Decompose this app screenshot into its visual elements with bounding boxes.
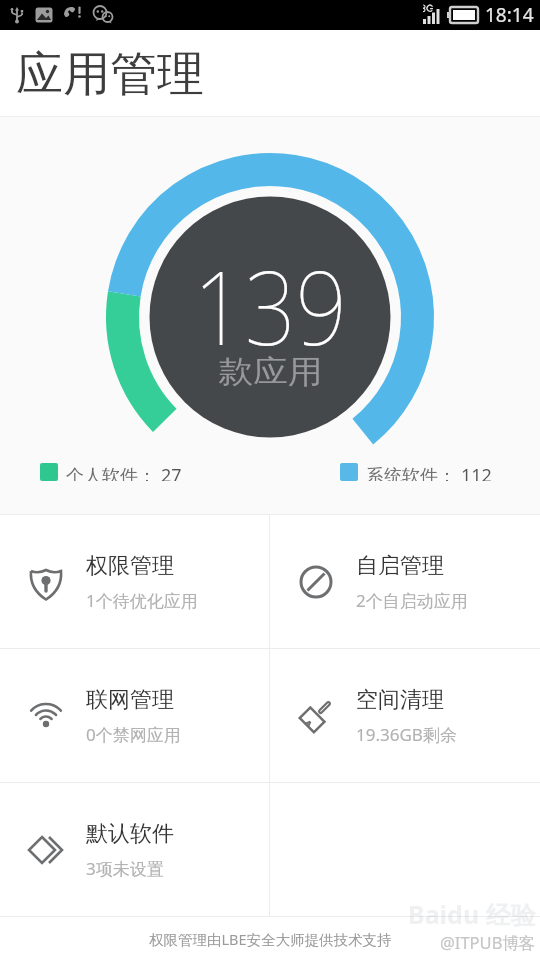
button[interactable]: 默认软件 [0,783,269,916]
staticText: 27 [161,463,182,481]
staticText: 自启管理 [356,552,444,580]
staticText: 空间清理 [356,686,444,714]
staticText: 3项未设置 [86,857,164,880]
staticText: 0个禁网应用 [86,723,181,746]
staticText: 个人软件： [66,463,161,481]
staticText: Baidu 经验 [408,897,536,931]
staticText: 权限管理 [86,552,174,580]
button[interactable]: 权限管理 [0,515,269,648]
staticText: 款应用 [218,352,323,391]
button[interactable]: 自启管理 [270,515,540,648]
staticText: 1个待优化应用 [86,589,198,612]
staticText: 139 [193,236,347,356]
staticText: 18:14 [485,2,534,28]
staticText: @ITPUB博客 [440,931,536,954]
staticText: 权限管理由LBE安全大师提供技术支持 [149,929,392,949]
button[interactable]: 联网管理 [0,649,269,782]
staticText: 112 [461,463,492,481]
staticText: 2个自启动应用 [356,589,468,612]
button[interactable]: 空间清理 [270,649,540,782]
staticText: 联网管理 [86,686,174,714]
staticText: 19.36GB剩余 [356,723,457,746]
staticText: 应用管理 [16,45,204,104]
staticText: 默认软件 [86,820,174,848]
staticText: 系统软件： [366,463,461,481]
